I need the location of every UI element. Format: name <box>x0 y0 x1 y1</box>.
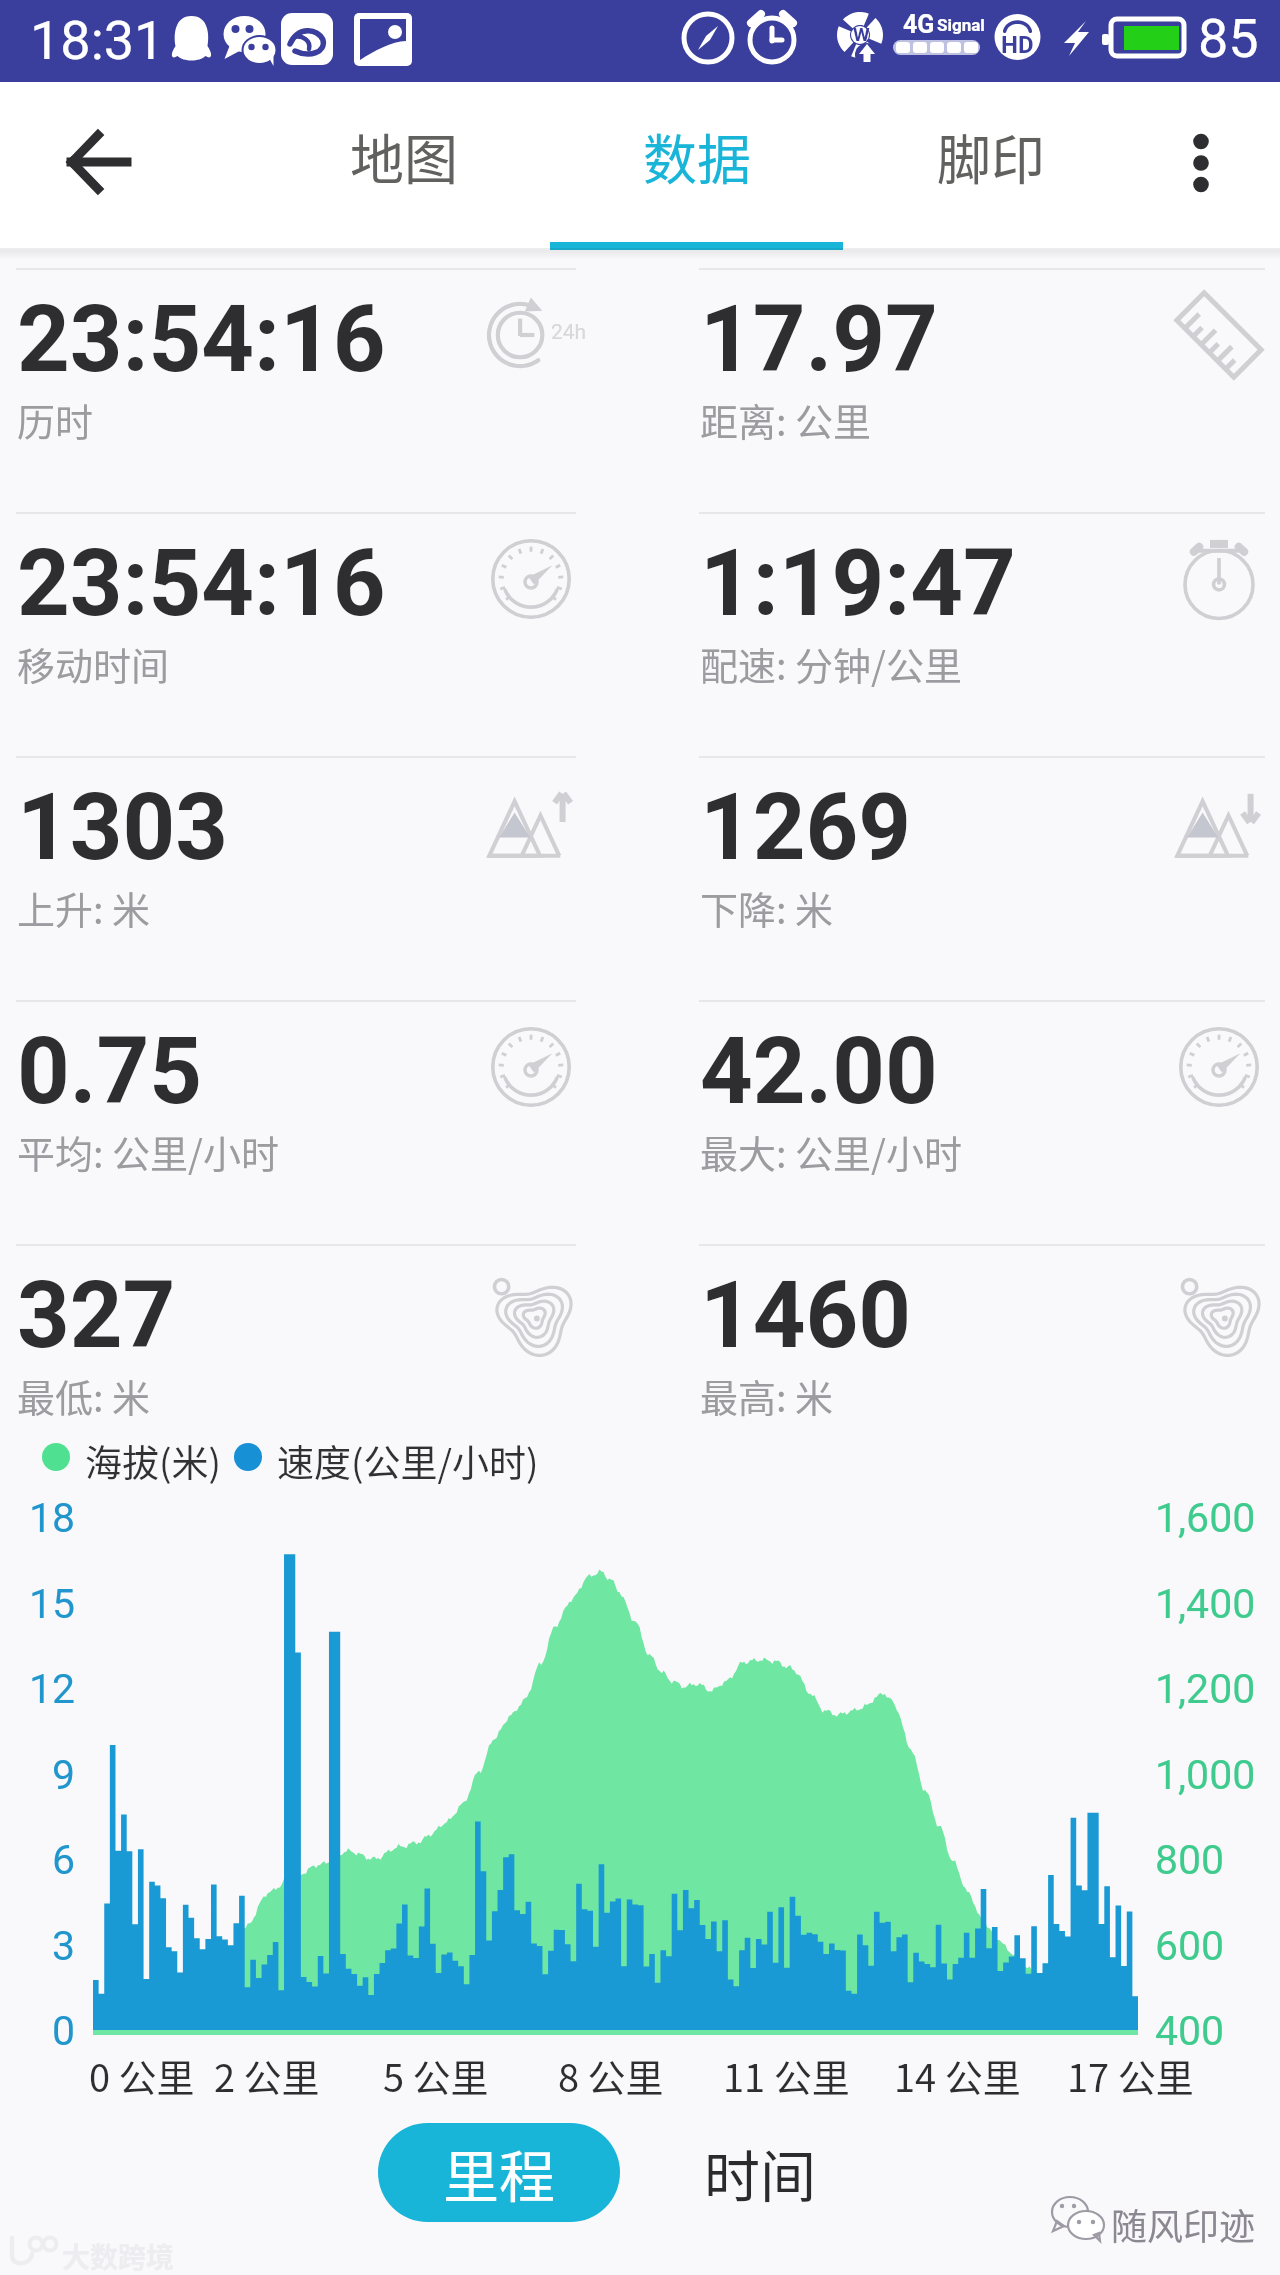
staticText: 17 公里 <box>1067 2048 1194 2103</box>
button[interactable]: 23:54:16 <box>0 250 670 494</box>
staticText: 历时 <box>17 392 94 447</box>
staticText: 6 <box>52 1836 76 1884</box>
staticText: 4G <box>903 10 935 39</box>
staticText: 上升: 米 <box>17 880 151 935</box>
staticText: 23:54:16 <box>17 530 386 638</box>
button[interactable]: 0.75 <box>0 982 670 1226</box>
staticText: 移动时间 <box>17 636 170 691</box>
staticText: 11 公里 <box>723 2048 850 2103</box>
staticText: 5 公里 <box>383 2048 489 2103</box>
staticText: 1,200 <box>1155 1665 1256 1713</box>
staticText: 0 <box>52 2007 76 2055</box>
staticText: 平均: 公里/小时 <box>17 1124 279 1179</box>
button[interactable]: 1269 <box>683 738 1280 982</box>
button[interactable]: 1303 <box>0 738 670 982</box>
staticText: 1460 <box>700 1262 912 1370</box>
staticText: 17.97 <box>700 286 938 394</box>
staticText: 14 公里 <box>894 2048 1021 2103</box>
staticText: 23:54:16 <box>17 286 386 394</box>
button[interactable]: 23:54:16 <box>0 494 670 738</box>
staticText: 脚印 <box>937 117 1045 195</box>
button[interactable]: 脚印 <box>844 82 1137 250</box>
button[interactable]: 1460 <box>683 1226 1280 1470</box>
staticText: 15 <box>29 1580 76 1628</box>
staticText: W <box>853 23 870 45</box>
button[interactable]: 里程 <box>378 2123 620 2222</box>
staticText: 海拔(米) <box>85 1434 222 1488</box>
button[interactable]: Back <box>39 106 159 226</box>
staticText: 里程 <box>443 2132 555 2213</box>
staticText: 600 <box>1155 1922 1225 1970</box>
staticText: 1:19:47 <box>700 530 1016 638</box>
staticText: 数据 <box>643 117 751 195</box>
staticText: 距离: 公里 <box>700 392 872 447</box>
staticText: 最大: 公里/小时 <box>700 1124 962 1179</box>
staticText: 400 <box>1155 2007 1225 2055</box>
staticText: Signal <box>937 15 985 35</box>
staticText: 时间 <box>704 2132 816 2213</box>
staticText: 8 公里 <box>558 2048 664 2103</box>
staticText: 速度(公里/小时) <box>277 1434 539 1488</box>
staticText: 800 <box>1155 1836 1225 1884</box>
staticText: 0 公里 <box>89 2048 195 2103</box>
staticText: 1,000 <box>1155 1751 1256 1799</box>
button[interactable]: 42.00 <box>683 982 1280 1226</box>
button[interactable]: More options <box>1140 91 1270 241</box>
staticText: 2 公里 <box>214 2048 320 2103</box>
staticText: HD <box>1001 31 1034 59</box>
staticText: 地图 <box>350 117 458 195</box>
staticText: 1303 <box>17 774 229 882</box>
staticText: 327 <box>17 1262 176 1370</box>
button[interactable]: 17.97 <box>683 250 1280 494</box>
staticText: 0.75 <box>17 1018 203 1126</box>
staticText: 1269 <box>700 774 912 882</box>
staticText: 42.00 <box>700 1018 938 1126</box>
staticText: 配速: 分钟/公里 <box>700 636 962 691</box>
staticText: 9 <box>52 1751 76 1799</box>
staticText: 18 <box>29 1494 76 1542</box>
button[interactable]: 时间 <box>660 2123 860 2222</box>
staticText: 下降: 米 <box>700 880 834 935</box>
staticText: 1,600 <box>1155 1494 1256 1542</box>
staticText: 12 <box>29 1665 76 1713</box>
staticText: 18:31 <box>30 9 165 72</box>
staticText: 大数跨境 <box>62 2236 175 2275</box>
staticText: 3 <box>52 1922 76 1970</box>
staticText: 最低: 米 <box>17 1368 151 1423</box>
button[interactable]: 数据 <box>550 82 843 250</box>
staticText: 最高: 米 <box>700 1368 834 1423</box>
button[interactable]: 地图 <box>257 82 550 250</box>
staticText: 1,400 <box>1155 1580 1256 1628</box>
staticText: 随风印迹 <box>1111 2198 1256 2250</box>
staticText: 85 <box>1198 7 1259 70</box>
staticText: 24h <box>551 320 587 345</box>
button[interactable]: 327 <box>0 1226 670 1470</box>
button[interactable]: 1:19:47 <box>683 494 1280 738</box>
